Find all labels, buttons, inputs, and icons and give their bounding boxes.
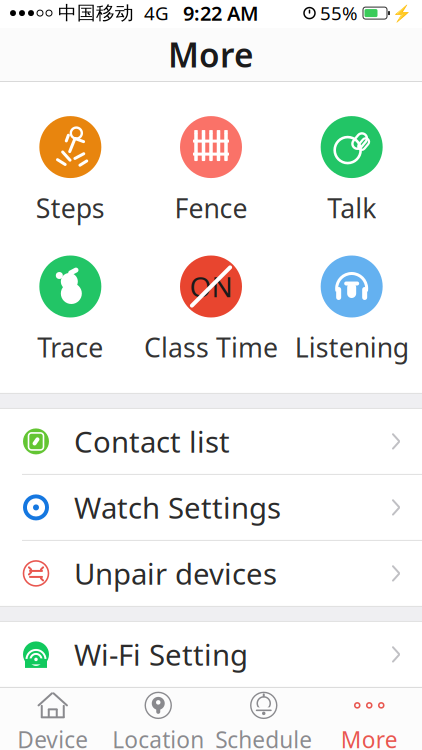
staticText: ⚡ [392, 4, 412, 22]
staticText: Contact list [74, 422, 230, 461]
button[interactable]: Unpair devices [0, 541, 422, 606]
staticText: 55% [320, 1, 358, 25]
staticText: Trace [37, 329, 103, 365]
staticText: More [168, 32, 254, 77]
button[interactable]: Schedule [211, 685, 316, 750]
button[interactable]: Wi-Fi Setting [0, 622, 422, 687]
button[interactable]: Device [0, 685, 105, 750]
staticText: 中国移动 [58, 2, 134, 24]
staticText: More [341, 724, 398, 750]
button[interactable]: Watch Settings [0, 475, 422, 541]
staticText: Device [17, 724, 88, 750]
staticText: Watch Settings [74, 488, 281, 527]
button[interactable]: Trace [0, 251, 141, 369]
button[interactable]: Steps [0, 112, 141, 229]
button[interactable]: Location [105, 685, 211, 750]
staticText: 4G [144, 1, 169, 25]
staticText: Class Time [144, 329, 278, 365]
staticText: Talk [327, 190, 376, 225]
button[interactable]: Listening [281, 251, 422, 369]
staticText: Wi-Fi Setting [74, 635, 248, 674]
button[interactable]: Fence [141, 112, 281, 229]
button[interactable]: Talk [281, 112, 422, 229]
staticText: Unpair devices [74, 554, 277, 593]
button[interactable]: ON [141, 251, 281, 369]
staticText: Steps [36, 190, 105, 225]
button[interactable]: More [316, 685, 422, 750]
staticText: Location [112, 724, 204, 750]
staticText: Schedule [215, 724, 312, 750]
staticText: 9:22 AM [183, 0, 259, 26]
staticText: Listening [295, 329, 409, 365]
staticText: Fence [174, 190, 247, 225]
button[interactable]: Contact list [0, 409, 422, 475]
staticText: ON [189, 268, 232, 305]
